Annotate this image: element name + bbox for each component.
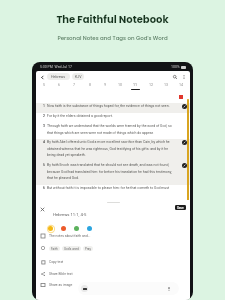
staticText: Hebrews <box>51 75 66 79</box>
staticText: 2 <box>43 114 47 118</box>
staticText: Personal Notes and Tags on God's Word <box>57 34 168 42</box>
button[interactable]: Share as image <box>36 280 190 290</box>
button[interactable]: God's word <box>62 246 81 251</box>
button[interactable]: Back <box>38 73 46 81</box>
button[interactable]: 1 <box>36 103 190 113</box>
staticText: Faith <box>51 247 58 251</box>
staticText: Through faith we understand that the wor… <box>47 124 177 135</box>
button[interactable]: Highlight colour <box>85 224 94 233</box>
button[interactable]: Share Bible text <box>36 269 190 279</box>
button[interactable]: 9 <box>99 82 112 94</box>
button[interactable]: Faith <box>36 243 190 253</box>
button[interactable]: Search <box>78 282 179 295</box>
button[interactable]: Faith <box>49 246 60 251</box>
button[interactable]: Highlight colour <box>72 224 81 233</box>
button[interactable]: KJV <box>72 73 84 80</box>
staticText: God's word <box>64 247 79 251</box>
staticText: Now faith is the substance of things hop… <box>47 104 177 108</box>
button[interactable]: Highlight colour <box>59 224 68 233</box>
button[interactable]: Pray <box>83 246 93 251</box>
button[interactable]: 3 <box>36 123 190 139</box>
staticText: The Faithful Notebook <box>56 12 169 26</box>
staticText: KJV <box>75 75 82 79</box>
staticText: Share as image <box>49 283 73 287</box>
button[interactable]: The notes about faith and... <box>36 231 190 241</box>
button[interactable]: 7 <box>68 82 81 94</box>
button[interactable]: Highlight colour <box>46 224 55 233</box>
button[interactable]: 5 <box>36 162 190 185</box>
staticText: 5:30 PM Wed Jul 17 <box>40 65 72 69</box>
staticText: 9 <box>104 83 107 87</box>
staticText: 100% <box>171 65 180 69</box>
staticText: For by it the elders obtained a good rep… <box>47 114 177 118</box>
button[interactable]: Save <box>175 205 186 210</box>
staticText: The notes about faith and... <box>49 234 91 238</box>
staticText: Share Bible text <box>49 272 73 276</box>
staticText: By faith Enoch was translated that he sh… <box>47 163 177 180</box>
staticText: Hebrews 11:1, 4-5 <box>53 212 87 217</box>
staticText: 13 <box>164 83 169 87</box>
button[interactable]: 4 <box>36 139 190 162</box>
button[interactable]: 14 <box>175 82 188 94</box>
button[interactable]: 6 <box>53 82 66 94</box>
button[interactable]: Close <box>39 206 46 213</box>
staticText: 3 <box>43 124 47 128</box>
staticText: Save <box>177 206 184 210</box>
staticText: 12 <box>149 83 154 87</box>
button[interactable]: 12 <box>145 82 158 94</box>
staticText: 6 <box>58 83 61 87</box>
button[interactable]: 13 <box>160 82 173 94</box>
staticText: 7 <box>73 83 76 87</box>
staticText: 11 <box>133 83 138 87</box>
staticText: 5 <box>43 163 47 167</box>
staticText: 6 <box>43 186 47 190</box>
staticText: 5 <box>43 83 46 87</box>
staticText: Pray <box>85 247 91 251</box>
button[interactable]: 10 <box>114 82 127 94</box>
button[interactable]: Search <box>171 73 178 80</box>
staticText: 4 <box>43 140 47 144</box>
button[interactable]: More options <box>180 73 187 80</box>
button[interactable]: 8 <box>84 82 97 94</box>
staticText: 10 <box>118 83 123 87</box>
staticText: Copy text <box>49 260 64 264</box>
staticText: By faith Abel offered unto God a more ex… <box>47 140 177 157</box>
button[interactable]: Copy text <box>36 257 190 267</box>
staticText: 1 <box>43 104 47 108</box>
button[interactable]: 5 <box>38 82 51 94</box>
staticText: But without faith it is impossible to pl… <box>47 186 177 190</box>
button[interactable]: 11 <box>129 82 142 94</box>
staticText: 8 <box>89 83 92 87</box>
button[interactable]: 6 <box>36 185 190 195</box>
button[interactable]: Hebrews <box>47 73 70 80</box>
staticText: 14 <box>179 83 184 87</box>
button[interactable]: 2 <box>36 113 190 123</box>
